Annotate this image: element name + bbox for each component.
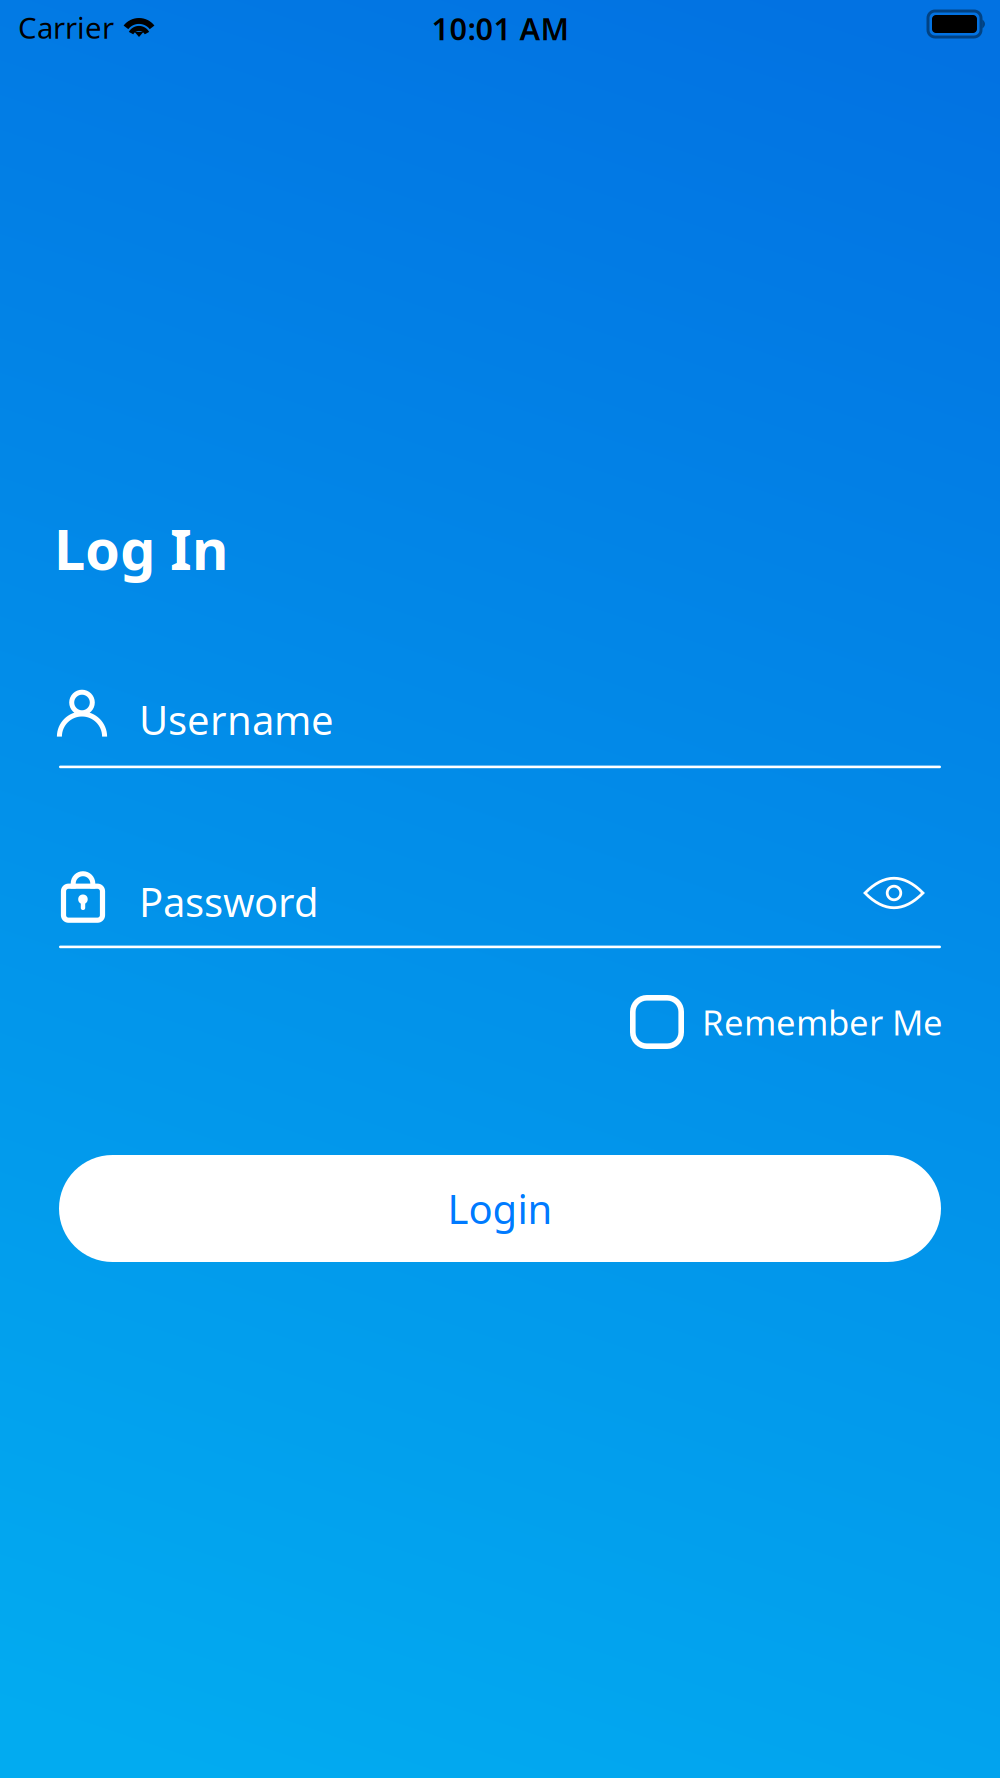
button[interactable]: Remember Me [630,989,943,1055]
staticText: Log In [54,511,228,585]
staticText: Carrier [18,8,114,47]
staticText: Username [139,693,334,746]
button[interactable]: Show password [849,858,939,928]
staticText: Remember Me [702,999,943,1045]
staticText: Password [139,875,319,928]
button[interactable]: Login [59,1155,941,1262]
staticText: Login [447,1182,552,1235]
staticText: 10:01 AM [431,8,568,49]
